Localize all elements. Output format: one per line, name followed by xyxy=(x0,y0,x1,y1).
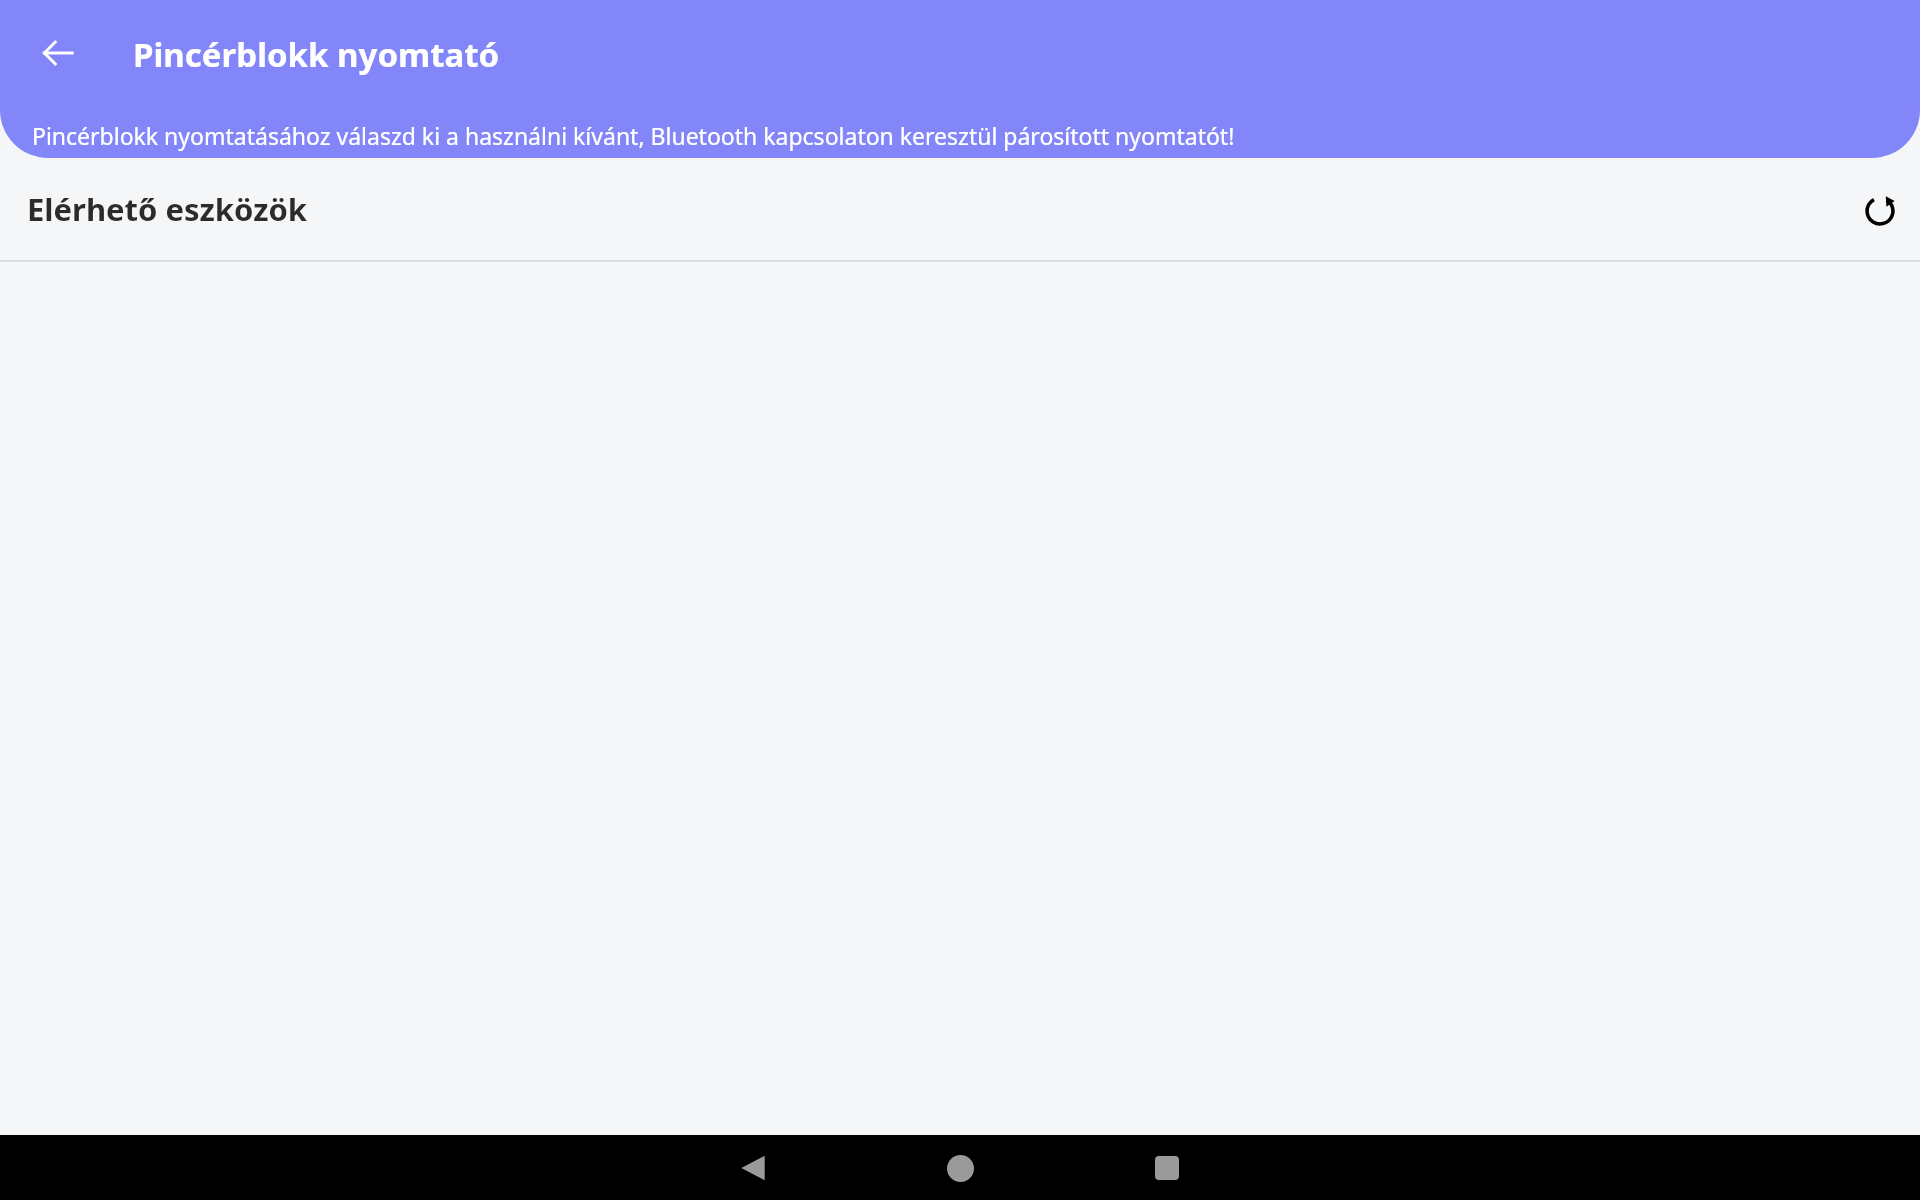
button[interactable]: Back xyxy=(723,1138,783,1198)
staticText: Pincérblokk nyomtatásához válaszd ki a h… xyxy=(32,120,1912,151)
staticText: Elérhető eszközök xyxy=(27,188,308,230)
staticText: Pincérblokk nyomtató xyxy=(133,32,500,77)
button[interactable]: Back xyxy=(26,21,90,85)
button[interactable]: Recent apps xyxy=(1137,1138,1197,1198)
button[interactable]: Home xyxy=(930,1138,990,1198)
button[interactable]: Refresh xyxy=(1846,176,1914,244)
